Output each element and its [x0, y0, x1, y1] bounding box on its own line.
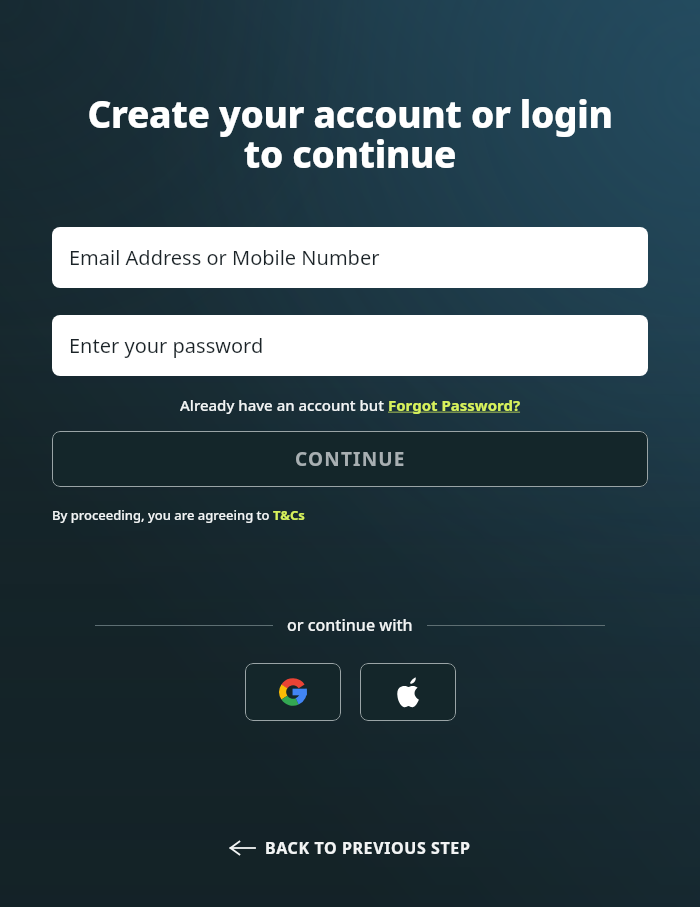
button[interactable]: By proceeding, you are agreeing to — [52, 504, 305, 526]
staticText: By proceeding, you are agreeing to — [52, 506, 273, 524]
staticText: Already have an account but — [180, 395, 388, 415]
staticText: Create your account or login to continue — [30, 88, 670, 179]
button[interactable]: Continue with Google — [245, 663, 341, 721]
button[interactable]: Continue with Apple — [360, 663, 456, 721]
button[interactable]: Email Address or Mobile Number — [52, 227, 648, 288]
staticText: CONTINUE — [295, 446, 406, 472]
staticText: Email Address or Mobile Number — [69, 244, 380, 271]
staticText: Forgot Password? — [388, 395, 521, 415]
button[interactable]: CONTINUE — [52, 431, 648, 487]
staticText: BACK TO PREVIOUS STEP — [265, 837, 471, 859]
staticText: or continue with — [287, 614, 413, 636]
button[interactable]: Enter your password — [52, 315, 648, 376]
staticText: Enter your password — [69, 332, 264, 359]
button[interactable]: Already have an account but — [176, 393, 525, 417]
button[interactable]: BACK TO PREVIOUS STEP — [221, 831, 479, 865]
staticText: T&Cs — [273, 506, 305, 524]
